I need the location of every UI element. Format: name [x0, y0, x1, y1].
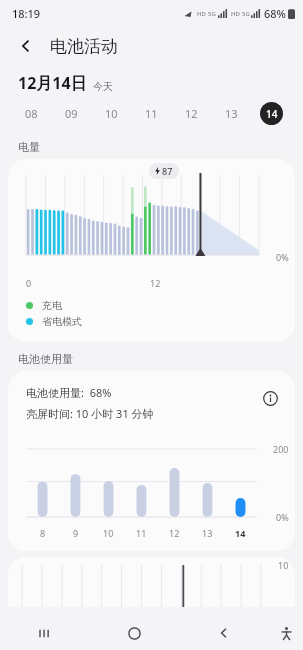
staticText: 5G [208, 10, 216, 18]
button[interactable]: 最近任务 [0, 616, 89, 650]
staticText: 200 [273, 443, 289, 455]
staticText: 12 [150, 277, 161, 289]
button[interactable]: 信息 [257, 385, 283, 411]
button[interactable]: 主页 [89, 616, 179, 650]
button[interactable]: 返回 [10, 30, 42, 62]
button[interactable]: 13 [211, 96, 251, 130]
staticText: 8 [40, 527, 46, 539]
staticText: 87 [162, 165, 173, 177]
staticText: 亮屏时间: 10 小时 31 分钟 [26, 406, 154, 421]
staticText: 11 [145, 106, 158, 121]
staticText: 11 [136, 527, 147, 539]
staticText: 省电模式 [42, 315, 82, 328]
button[interactable]: 11 [131, 96, 171, 130]
staticText: 14 [266, 107, 278, 121]
staticText: 电池使用量 [18, 352, 73, 366]
staticText: 10 [103, 527, 114, 539]
staticText: 18:19 [12, 6, 41, 21]
staticText: 今天 [93, 80, 113, 93]
staticText: 68% [264, 6, 286, 21]
staticText: 0% [276, 251, 289, 263]
staticText: 9 [73, 527, 79, 539]
staticText: 电池活动 [50, 36, 118, 57]
button[interactable]: 返回 [179, 616, 269, 650]
staticText: 10 [278, 559, 289, 571]
staticText: 14 [235, 527, 246, 539]
staticText: 0 [26, 277, 32, 289]
staticText: 12 [169, 527, 180, 539]
staticText: 0% [276, 511, 289, 523]
staticText: 12月14日 [18, 72, 87, 94]
staticText: 08 [25, 106, 38, 121]
staticText: 09 [65, 106, 78, 121]
staticText: HD [197, 10, 206, 18]
staticText: 10 [105, 106, 118, 121]
button[interactable]: 无障碍 [269, 616, 303, 650]
button[interactable]: 09 [51, 96, 91, 130]
staticText: HD [231, 10, 240, 18]
staticText: 电量 [18, 140, 40, 154]
staticText: 5G [242, 10, 250, 18]
staticText: 充电 [42, 299, 62, 312]
staticText: 13 [225, 106, 238, 121]
staticText: 13 [202, 527, 213, 539]
button[interactable]: 14 [251, 96, 291, 130]
button[interactable]: 10 [91, 96, 131, 130]
staticText: 电池使用量: 68% [26, 385, 112, 400]
staticText: 12 [185, 106, 198, 121]
button[interactable]: 08 [12, 96, 51, 130]
button[interactable]: 12 [171, 96, 211, 130]
